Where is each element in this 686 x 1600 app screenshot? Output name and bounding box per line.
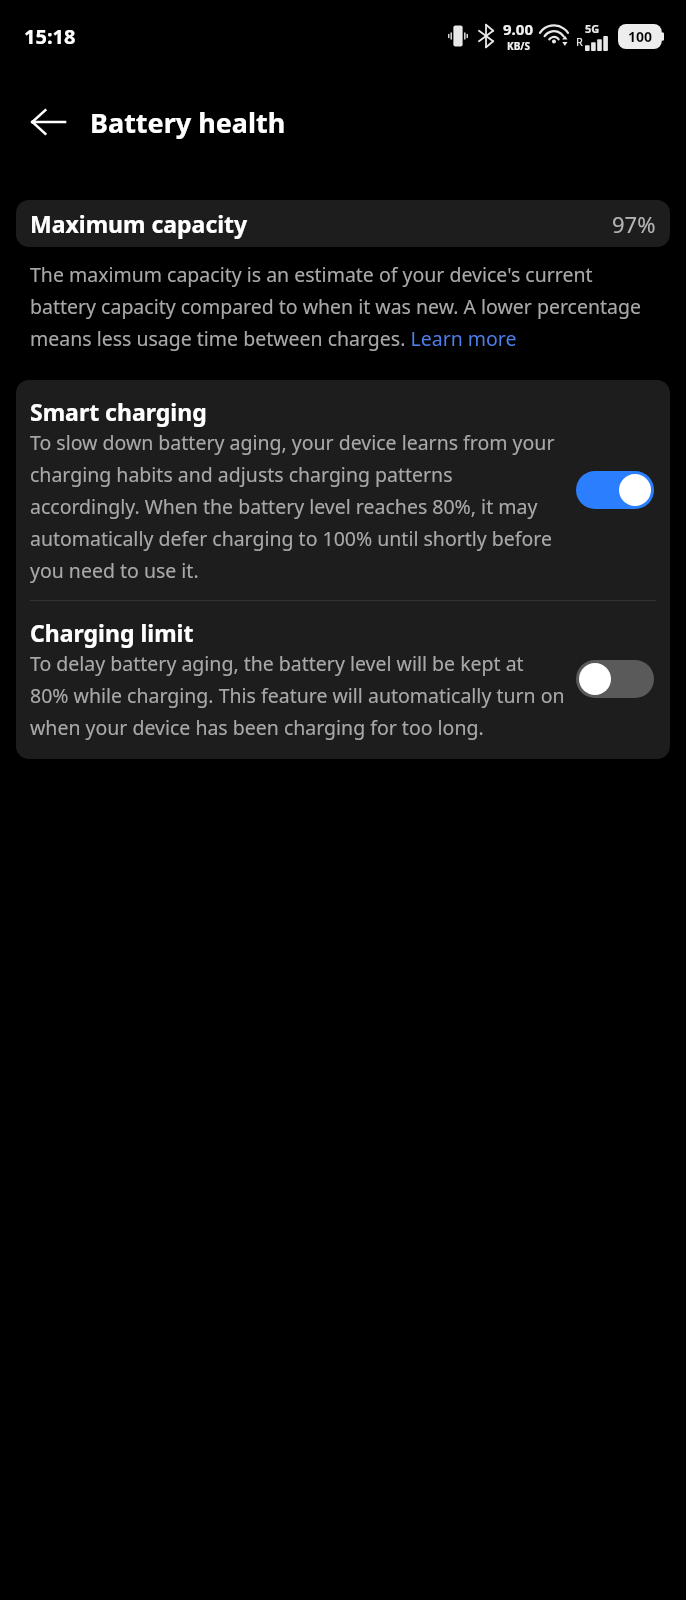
button[interactable]: Charging limit [16,601,670,759]
button[interactable]: Smart charging toggle [576,471,654,509]
staticText: To slow down battery aging, your device … [30,429,566,584]
staticText: To delay battery aging, the battery leve… [30,650,566,741]
staticText: Smart charging [30,396,207,427]
staticText: Maximum capacity [30,208,248,239]
button[interactable]: Maximum capacity [16,200,670,247]
staticText: 9.00 [503,19,533,39]
staticText: 100 [628,27,653,46]
staticText: Battery health [90,104,286,141]
staticText: 5G [585,21,600,36]
staticText: R [576,34,583,49]
button[interactable]: Smart charging [16,380,670,600]
button[interactable]: Charging limit toggle [576,660,654,698]
staticText: 15:18 [24,23,76,50]
staticText: KB/S [507,39,530,53]
staticText: The maximum capacity is an estimate of y… [30,261,656,352]
staticText: Charging limit [30,617,194,648]
staticText: 97% [612,209,656,239]
button[interactable]: Back [20,94,76,150]
